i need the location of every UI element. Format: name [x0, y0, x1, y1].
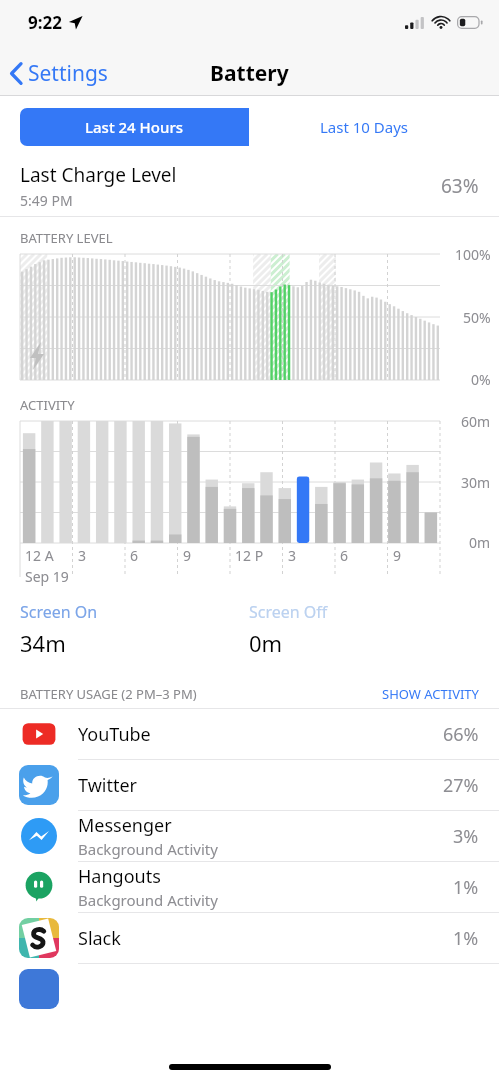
staticText: BATTERY USAGE (2 PM–3 PM) — [20, 685, 197, 703]
staticText: BATTERY LEVEL — [20, 229, 113, 247]
button[interactable]: App — [0, 964, 499, 1014]
staticText: 12 P — [235, 546, 264, 565]
staticText: 50% — [463, 308, 491, 327]
other: Hangouts — [19, 867, 59, 907]
staticText: 3% — [453, 824, 479, 849]
staticText: 0m — [249, 628, 283, 658]
staticText: YouTube — [78, 722, 151, 747]
staticText: SHOW ACTIVITY — [382, 685, 479, 703]
staticText: 1% — [453, 926, 479, 951]
other: Twitter — [19, 765, 59, 805]
staticText: Battery — [210, 59, 289, 88]
button[interactable]: Screen On — [20, 601, 249, 658]
staticText: 6 — [340, 546, 349, 565]
staticText: 100% — [455, 245, 491, 264]
staticText: 60m — [461, 412, 491, 431]
staticText: Slack — [78, 926, 121, 951]
button[interactable]: Hangouts — [0, 862, 499, 912]
staticText: 0m — [469, 533, 491, 552]
staticText: 3 — [78, 546, 87, 565]
staticText: ACTIVITY — [20, 396, 75, 414]
button[interactable]: Last Charge Level — [0, 156, 499, 216]
staticText: 6 — [130, 546, 139, 565]
staticText: 27% — [443, 773, 479, 798]
button[interactable]: Last 10 Days — [249, 108, 479, 146]
staticText: 5:49 PM — [20, 191, 73, 210]
staticText: Twitter — [78, 773, 138, 798]
staticText: Screen On — [20, 601, 98, 623]
staticText: 9 — [183, 546, 192, 565]
button[interactable]: SHOW ACTIVITY — [382, 685, 499, 703]
staticText: 30m — [461, 473, 491, 492]
button[interactable]: Slack — [0, 913, 499, 963]
other: YouTube — [19, 714, 59, 754]
button[interactable]: Last 24 Hours — [20, 108, 249, 146]
staticText: 12 A — [25, 546, 54, 565]
staticText: 9 — [393, 546, 402, 565]
staticText: 66% — [443, 722, 479, 747]
staticText: Background Activity — [78, 890, 218, 910]
button[interactable]: Twitter — [0, 760, 499, 810]
staticText: Background Activity — [78, 839, 218, 859]
staticText: Messenger — [78, 813, 172, 838]
staticText: Last 24 Hours — [85, 117, 184, 137]
other: Messenger — [19, 816, 59, 856]
staticText: 0% — [471, 370, 491, 389]
staticText: Hangouts — [78, 864, 161, 889]
staticText: 1% — [453, 875, 479, 900]
button[interactable]: Screen Off — [249, 601, 479, 658]
staticText: Last Charge Level — [20, 162, 177, 188]
button[interactable]: YouTube — [0, 709, 499, 759]
staticText: 3 — [288, 546, 297, 565]
staticText: Last 10 Days — [320, 117, 409, 137]
staticText: Sep 19 — [25, 567, 69, 586]
button[interactable]: Settings — [0, 53, 118, 94]
other: Slack — [19, 918, 59, 958]
staticText: 34m — [20, 628, 66, 658]
staticText: 9:22 — [28, 11, 62, 34]
staticText: 63% — [441, 173, 479, 199]
staticText: Screen Off — [249, 601, 328, 623]
staticText: Settings — [28, 59, 108, 88]
other: App — [19, 969, 59, 1009]
button[interactable]: Messenger — [0, 811, 499, 861]
